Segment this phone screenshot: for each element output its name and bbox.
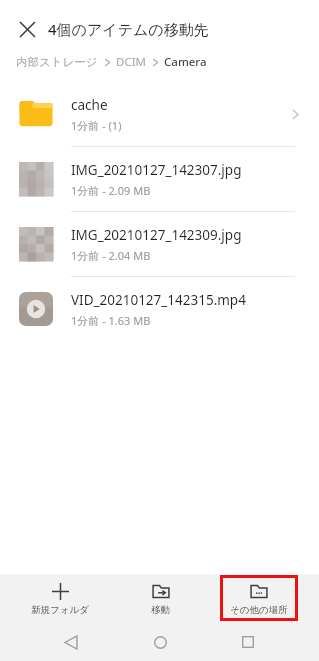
button[interactable]: 内部ストレージ [16, 55, 98, 69]
staticText: 1分前 - 1.63 MB [71, 313, 151, 328]
button[interactable]: Camera [164, 54, 207, 70]
staticText: VID_20210127_142315.mp4 [71, 291, 246, 309]
button[interactable]: 戻る [54, 625, 88, 659]
button[interactable]: 移動 [121, 575, 199, 621]
button[interactable]: cache [0, 82, 319, 146]
button[interactable]: IMG_20210127_142307.jpg [0, 147, 319, 211]
staticText: 新規フォルダ [31, 604, 89, 616]
button[interactable]: 閉じる [14, 16, 40, 42]
button[interactable]: ホーム [143, 625, 177, 659]
staticText: 移動 [151, 604, 170, 616]
staticText: 1分前 - (1) [71, 118, 122, 133]
staticText: 1分前 - 2.09 MB [71, 183, 151, 198]
button[interactable]: 新規フォルダ [21, 575, 99, 621]
staticText: IMG_20210127_142307.jpg [71, 161, 242, 179]
staticText: 1分前 - 2.04 MB [71, 248, 151, 263]
button[interactable]: その他の場所 [223, 578, 295, 618]
button[interactable]: IMG_20210127_142309.jpg [0, 212, 319, 276]
button[interactable]: VID_20210127_142315.mp4 [0, 277, 319, 341]
staticText: cache [71, 96, 108, 114]
button[interactable]: DCIM [116, 54, 146, 70]
staticText: IMG_20210127_142309.jpg [71, 226, 242, 244]
staticText: その他の場所 [230, 604, 288, 616]
button[interactable]: 最近のアプリ [231, 625, 265, 659]
staticText: 4個のアイテムの移動先 [48, 19, 209, 39]
